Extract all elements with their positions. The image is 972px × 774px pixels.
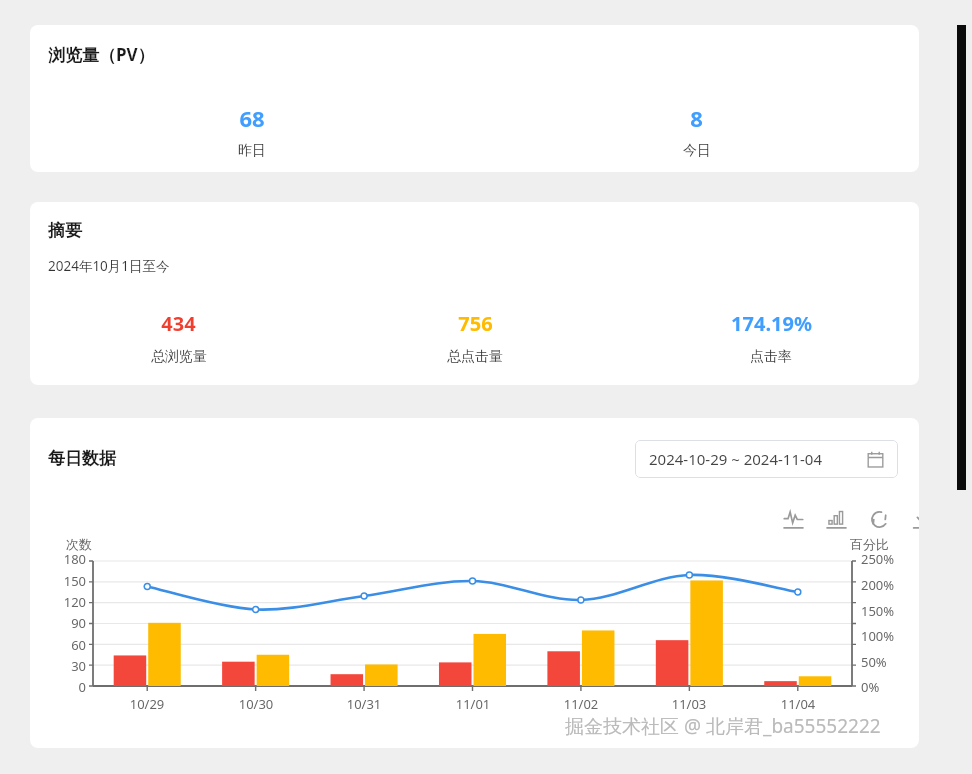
staticText: 点击率 bbox=[750, 348, 792, 366]
staticText: 11/01 bbox=[443, 695, 503, 713]
staticText: 100% bbox=[861, 627, 895, 645]
button[interactable]: 434 bbox=[30, 310, 327, 366]
staticText: 60 bbox=[34, 636, 86, 654]
staticText: 11/03 bbox=[659, 695, 719, 713]
button[interactable]: Download bbox=[909, 506, 919, 532]
button[interactable]: Refresh bbox=[866, 506, 892, 532]
staticText: 150 bbox=[34, 572, 86, 590]
staticText: 2024-10-29 ~ 2024-11-04 bbox=[649, 449, 822, 469]
staticText: 总浏览量 bbox=[151, 348, 207, 366]
button[interactable]: 68 bbox=[30, 103, 474, 160]
staticText: 68 bbox=[239, 103, 265, 133]
staticText: 浏览量（PV） bbox=[48, 43, 155, 66]
staticText: 掘金技术社区 @ 北岸君_ba55552222 bbox=[565, 713, 881, 739]
staticText: 0 bbox=[34, 678, 86, 696]
staticText: 总点击量 bbox=[447, 348, 503, 366]
button[interactable]: Line chart bbox=[780, 506, 806, 532]
button[interactable]: 756 bbox=[327, 310, 623, 366]
staticText: 30 bbox=[34, 657, 86, 675]
staticText: 120 bbox=[34, 593, 86, 611]
staticText: 180 bbox=[34, 550, 86, 568]
staticText: 250% bbox=[861, 550, 895, 568]
staticText: 50% bbox=[861, 653, 887, 671]
staticText: 今日 bbox=[683, 142, 711, 160]
staticText: 11/04 bbox=[768, 695, 828, 713]
staticText: 10/30 bbox=[226, 695, 286, 713]
staticText: 756 bbox=[458, 310, 493, 337]
staticText: 90 bbox=[34, 614, 86, 632]
button[interactable]: Bar chart bbox=[823, 506, 849, 532]
staticText: 200% bbox=[861, 576, 895, 594]
button[interactable]: 8 bbox=[474, 103, 919, 160]
button[interactable]: 174.19% bbox=[623, 310, 919, 366]
staticText: 150% bbox=[861, 602, 895, 620]
staticText: 10/31 bbox=[334, 695, 394, 713]
staticText: 2024年10月1日至今 bbox=[48, 257, 170, 275]
staticText: 百分比 bbox=[850, 536, 889, 552]
staticText: 次数 bbox=[66, 536, 92, 552]
staticText: 8 bbox=[690, 103, 703, 133]
staticText: 0% bbox=[861, 678, 880, 696]
staticText: 摘要 bbox=[48, 220, 82, 241]
staticText: 174.19% bbox=[731, 310, 812, 337]
staticText: 每日数据 bbox=[48, 448, 116, 469]
staticText: 10/29 bbox=[117, 695, 177, 713]
button[interactable]: 2024-10-29 ~ 2024-11-04 bbox=[635, 440, 898, 478]
staticText: 434 bbox=[161, 310, 196, 337]
staticText: 昨日 bbox=[238, 142, 266, 160]
staticText: 11/02 bbox=[551, 695, 611, 713]
